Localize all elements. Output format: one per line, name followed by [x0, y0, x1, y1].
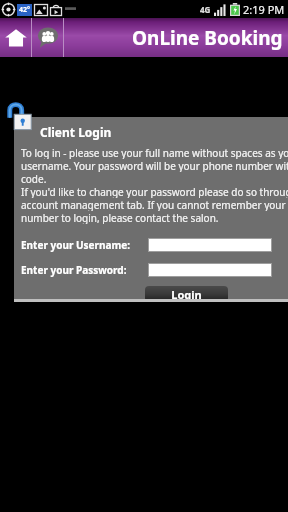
- staticText: Login: [171, 287, 202, 302]
- staticText: 42°: [19, 5, 30, 15]
- staticText: number to login, please contact the salo…: [21, 211, 219, 224]
- staticText: code.: [21, 172, 47, 185]
- staticText: If you'd like to change your password pl…: [21, 185, 288, 198]
- staticText: Enter your Password:: [21, 263, 127, 277]
- button[interactable]: Login: [145, 286, 228, 302]
- staticText: To log in - please use your full name wi…: [21, 146, 288, 159]
- staticText: username. Your password will be your pho…: [21, 159, 288, 172]
- staticText: Enter your Username:: [21, 238, 131, 252]
- button[interactable]: Contacts: [32, 18, 63, 57]
- staticText: 4G: [200, 4, 211, 15]
- staticText: Client Login: [40, 124, 112, 140]
- staticText: OnLine Booking: [132, 25, 283, 51]
- staticText: account management tab. If you cannot re…: [21, 198, 288, 211]
- staticText: 2:19 PM: [243, 2, 285, 17]
- button[interactable]: Home: [0, 18, 31, 57]
